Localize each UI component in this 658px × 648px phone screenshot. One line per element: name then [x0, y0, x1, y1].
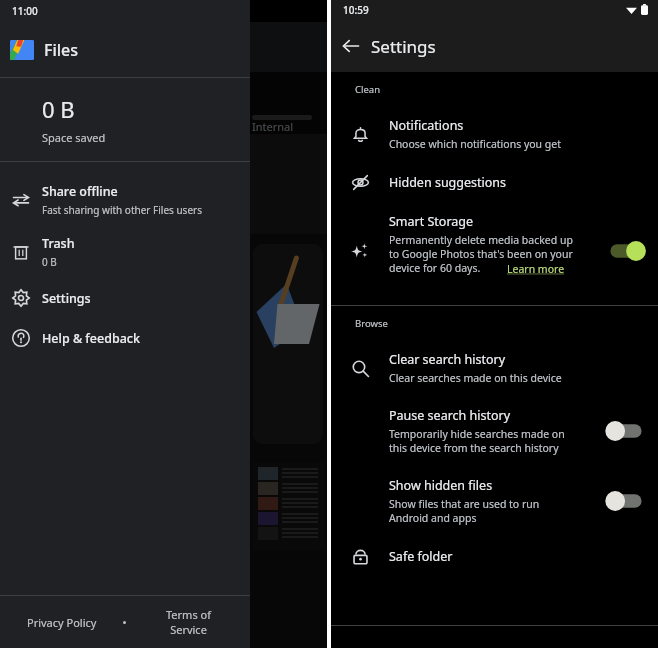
staticText: Show files that are used to run Android … [389, 497, 540, 525]
button[interactable]: Pause search history [331, 396, 658, 466]
staticText: Smart Storage [389, 213, 474, 230]
staticText: Privacy Policy [27, 615, 97, 630]
staticText: Browse [355, 317, 388, 330]
staticText: Files [44, 39, 79, 61]
button[interactable]: Off [604, 488, 644, 514]
button[interactable]: Help & feedback [0, 318, 250, 358]
staticText: Settings [371, 35, 436, 58]
button[interactable]: Terms of Service [126, 596, 250, 648]
staticText: Temporarily hide searches made on this d… [389, 427, 565, 455]
button[interactable]: Hidden suggestions [331, 162, 658, 203]
staticText: Clear searches made on this device [389, 371, 562, 385]
staticText: 0 B [42, 94, 75, 124]
button[interactable]: Smart Storage [331, 203, 658, 299]
staticText: Learn more [507, 262, 565, 276]
button[interactable]: Privacy Policy [0, 596, 123, 648]
staticText: 11:00 [12, 4, 38, 18]
staticText: Clean [355, 83, 381, 96]
staticText: Settings [42, 290, 91, 307]
staticText: Pause search history [389, 407, 511, 424]
button[interactable]: Files [0, 22, 250, 77]
staticText: Terms of Service [166, 607, 211, 637]
staticText: Share offline [42, 183, 118, 200]
staticText: Safe folder [389, 548, 453, 565]
staticText: Space saved [42, 130, 106, 145]
button[interactable]: Trash [0, 226, 250, 278]
button[interactable]: 0 B [0, 78, 250, 161]
staticText: Internal [252, 119, 294, 134]
button[interactable]: Share offline [0, 174, 250, 226]
button[interactable]: Safe folder [331, 536, 658, 577]
button[interactable]: Notifications [331, 106, 658, 162]
button[interactable]: Show hidden files [331, 466, 658, 536]
button[interactable]: Off [604, 418, 644, 444]
staticText: Fast sharing with other Files users [42, 203, 202, 217]
button[interactable]: On [608, 238, 648, 264]
staticText: Clear search history [389, 351, 506, 368]
button[interactable]: Settings [0, 278, 250, 318]
staticText: Notifications [389, 117, 464, 134]
button[interactable]: Back [331, 26, 371, 66]
staticText: Show hidden files [389, 477, 493, 494]
staticText: Hidden suggestions [389, 174, 507, 191]
staticText: Trash [42, 235, 75, 252]
staticText: 10:59 [343, 3, 369, 17]
button[interactable]: Learn more [507, 262, 565, 276]
staticText: Permanently delete media backed up to Go… [389, 233, 573, 275]
staticText: Choose which notifications you get [389, 137, 562, 151]
staticText: Help & feedback [42, 330, 140, 347]
staticText: 0 B [42, 255, 57, 269]
button[interactable]: Clear search history [331, 340, 658, 396]
